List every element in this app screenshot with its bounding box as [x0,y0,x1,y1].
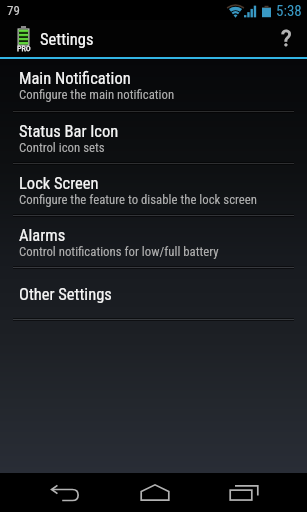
button[interactable]: Alarms [0,217,307,266]
staticText: 79 [7,3,20,18]
button[interactable]: Status Bar Icon [0,113,307,162]
button[interactable]: Help [265,20,307,57]
button[interactable]: PRO [0,20,102,57]
button[interactable]: Lock Screen [0,165,307,214]
staticText: Control notifications for low/full batte… [19,244,219,259]
staticText: Other Settings [19,285,112,304]
button[interactable]: Recent apps [214,473,274,512]
staticText: Alarms [19,226,66,245]
staticText: Control icon sets [19,140,105,155]
staticText: Status Bar Icon [19,122,119,141]
staticText: PRO [17,44,31,53]
staticText: Lock Screen [19,174,99,193]
staticText: 5:38 [276,2,302,20]
staticText: Settings [40,30,94,49]
button[interactable]: Back [35,473,95,512]
staticText: Configure the main notification [19,87,175,102]
button[interactable]: Main Notification [0,59,307,110]
staticText: Configure the feature to disable the loc… [19,192,258,207]
button[interactable]: Other Settings [0,269,307,318]
staticText: Main Notification [19,69,131,88]
staticText: ? [281,26,292,52]
button[interactable]: Home [125,473,185,512]
